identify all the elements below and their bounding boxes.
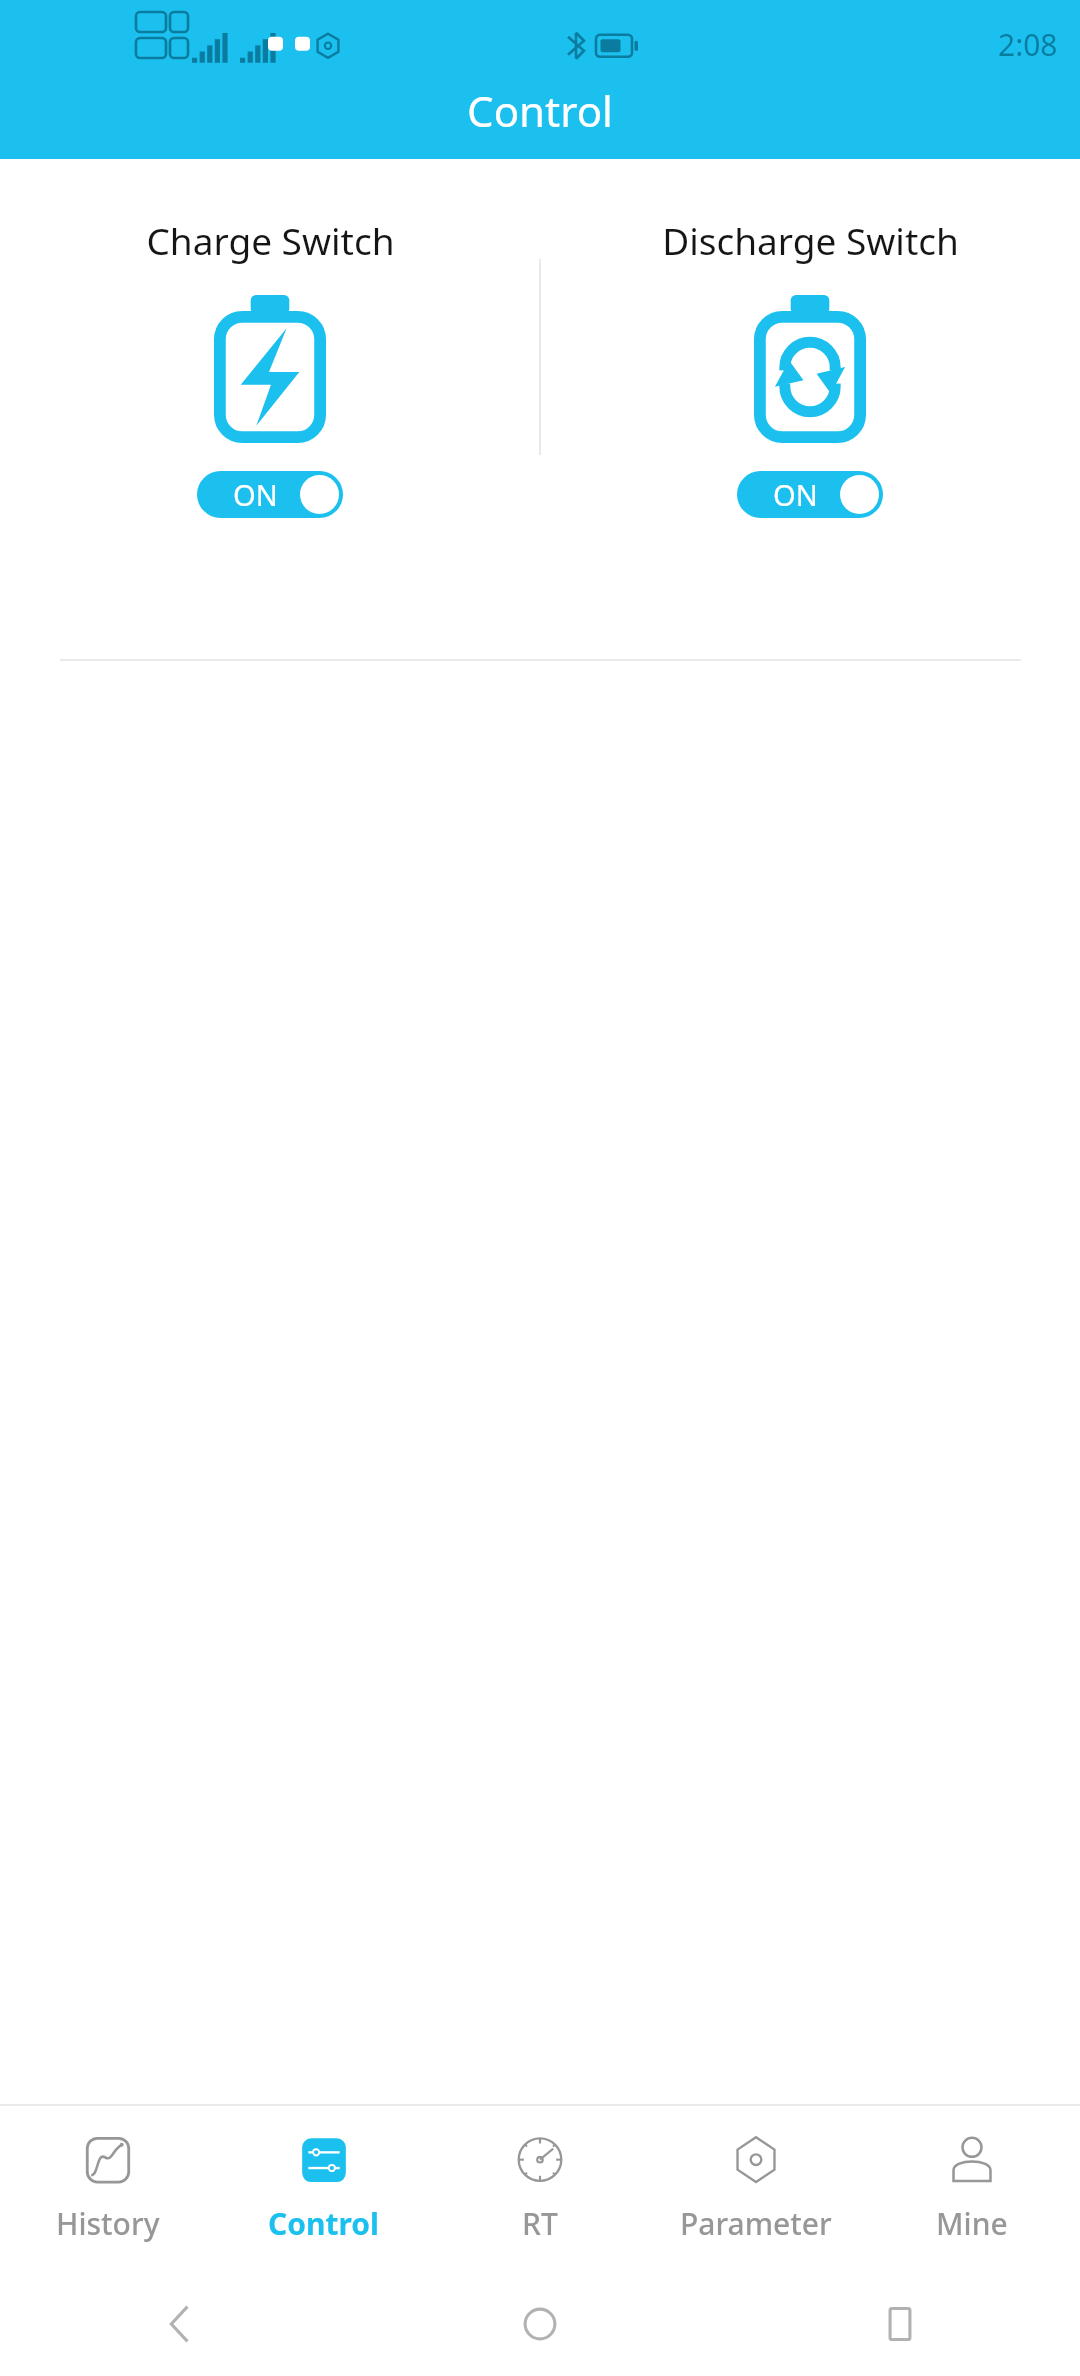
staticText: Control (467, 82, 613, 139)
button[interactable]: Home (360, 2272, 720, 2376)
staticText: History (56, 2203, 160, 2244)
staticText: Charge Switch (146, 215, 395, 265)
staticText: Mine (936, 2203, 1008, 2244)
button[interactable]: Discharge Switch (540, 215, 1080, 518)
staticText: ON (773, 475, 818, 514)
button[interactable]: History (0, 2106, 216, 2272)
button[interactable]: ON (737, 471, 883, 518)
button[interactable]: Mine (864, 2106, 1080, 2272)
staticText: Discharge Switch (662, 215, 959, 265)
button[interactable]: Charge Switch (0, 215, 540, 518)
staticText: Control (268, 2203, 380, 2244)
button[interactable]: ON (197, 471, 343, 518)
button[interactable]: Recents (720, 2272, 1080, 2376)
staticText: 2:08 (998, 24, 1058, 65)
staticText: ON (233, 475, 278, 514)
staticText: RT (522, 2203, 558, 2244)
button[interactable]: Control (216, 2106, 432, 2272)
button[interactable]: RT (432, 2106, 648, 2272)
button[interactable]: Back (0, 2272, 360, 2376)
button[interactable]: Parameter (648, 2106, 864, 2272)
staticText: Parameter (680, 2203, 832, 2244)
